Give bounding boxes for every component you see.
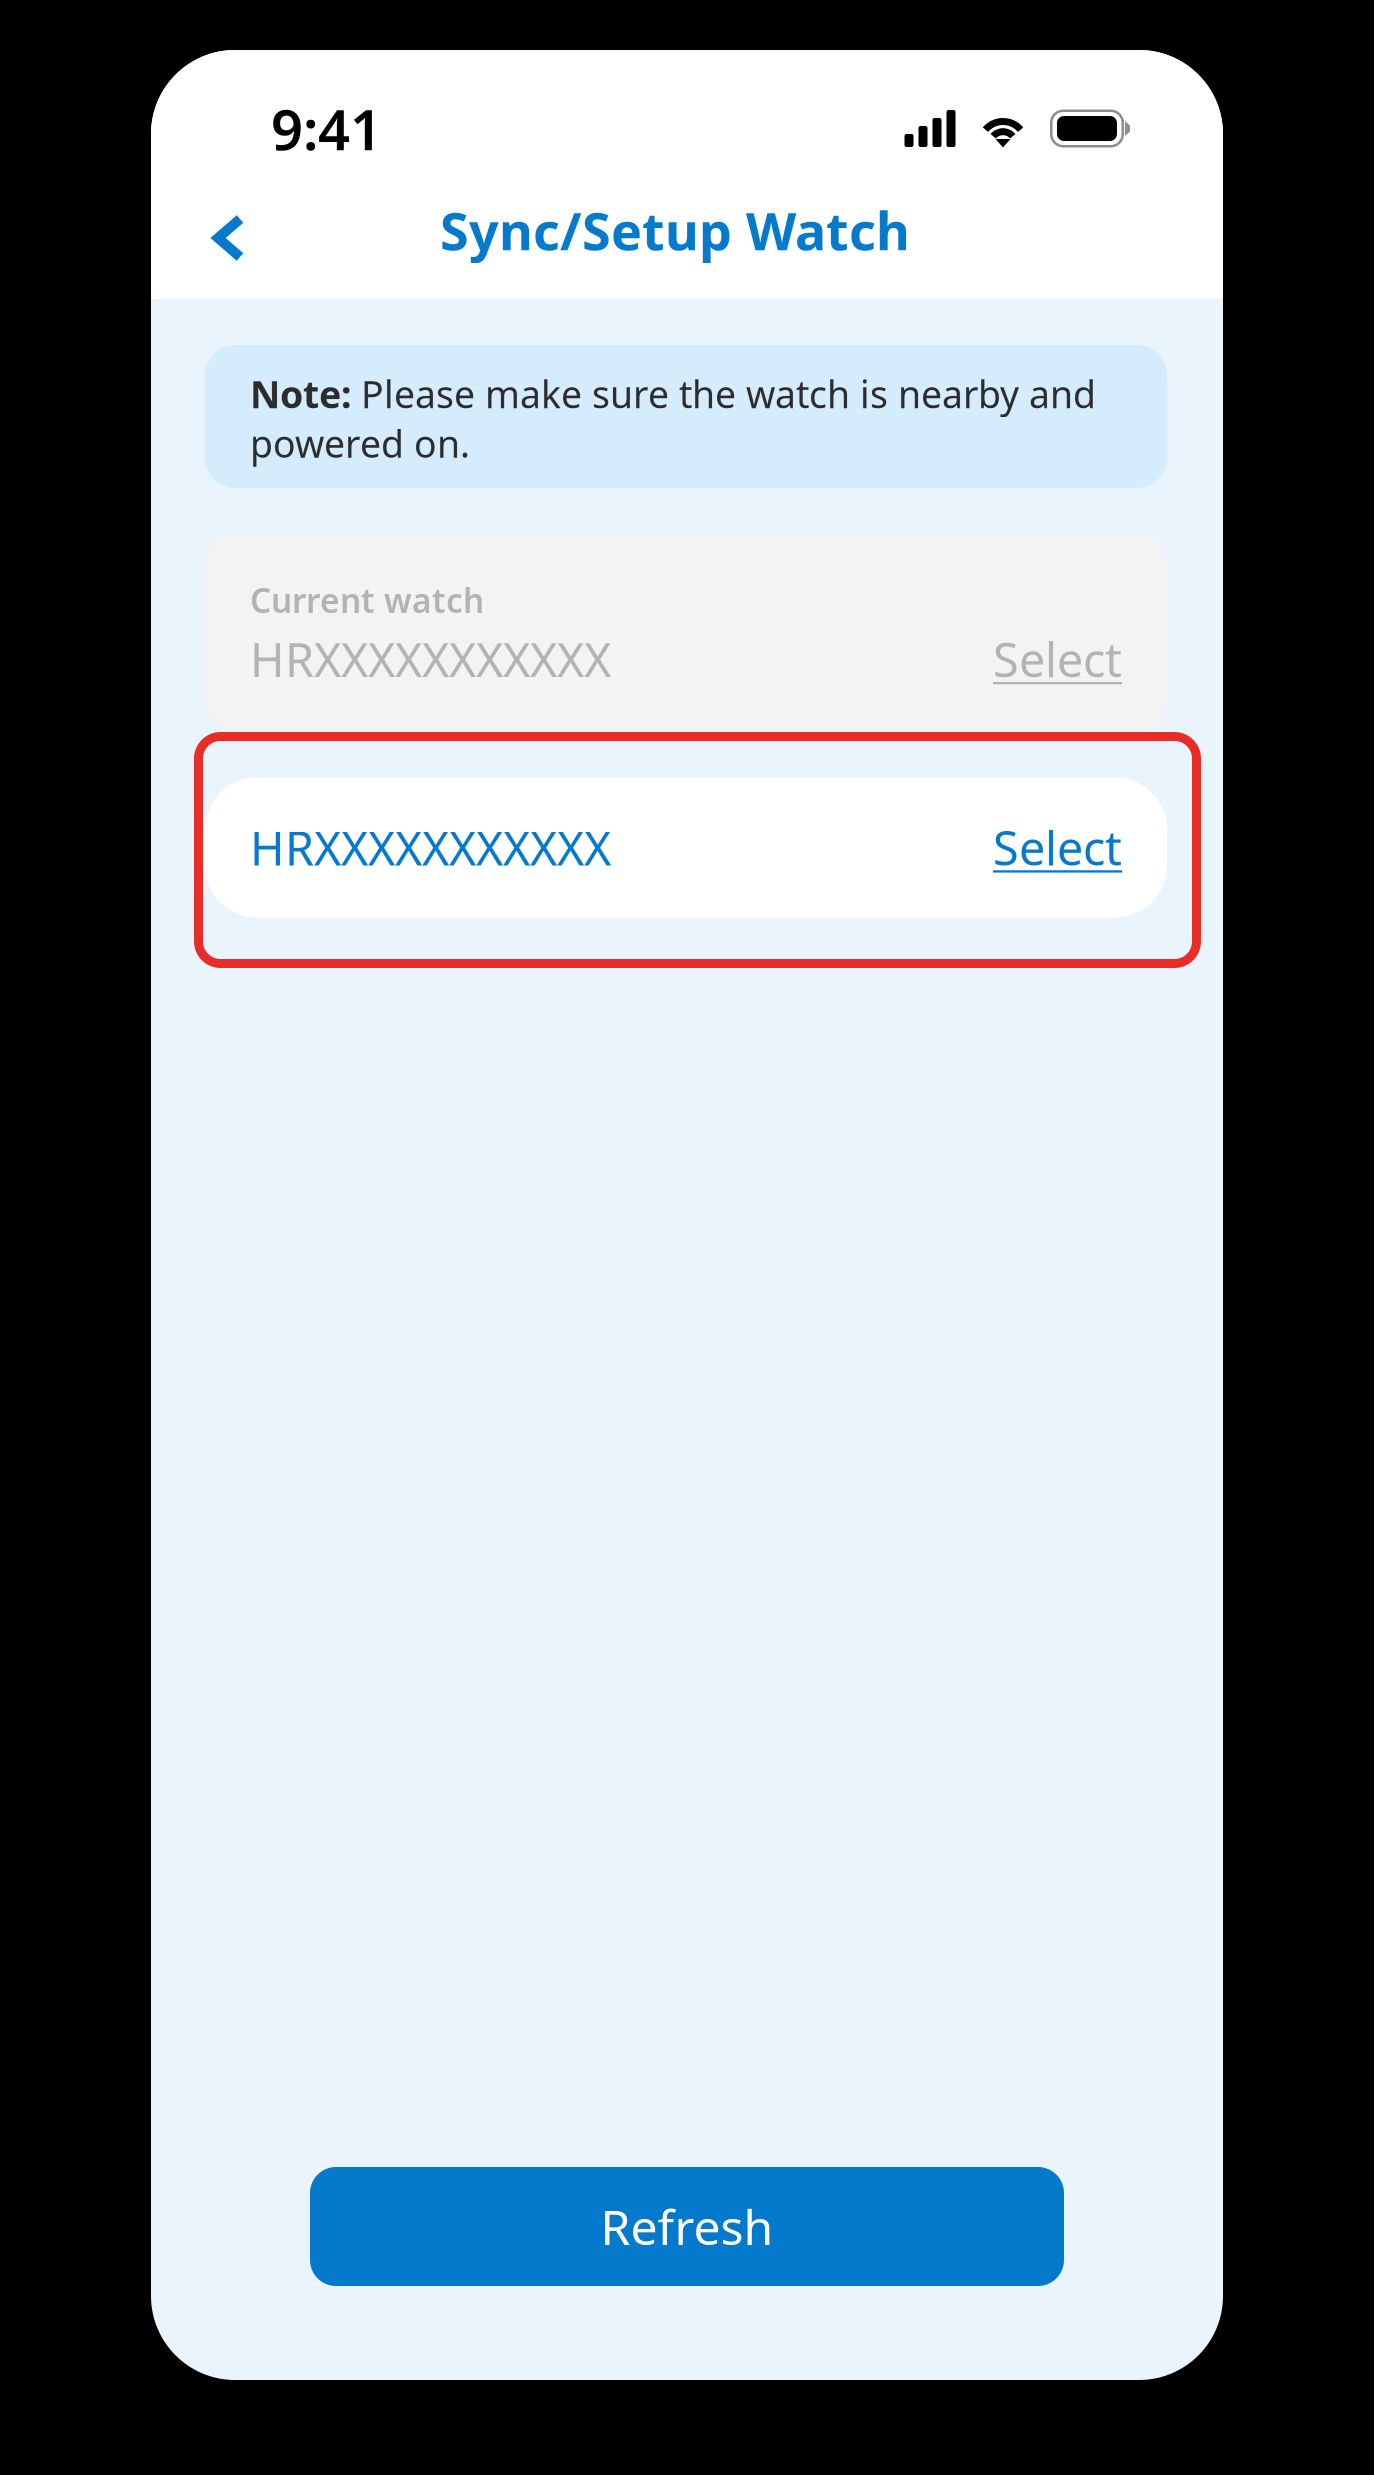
button[interactable]: Back	[151, 186, 266, 274]
staticText: 9:41	[271, 91, 382, 166]
button[interactable]: Select	[993, 628, 1122, 690]
staticText: Refresh	[600, 2195, 773, 2258]
staticText: Sync/Setup Watch	[440, 195, 910, 265]
button[interactable]: Refresh	[310, 2167, 1064, 2286]
staticText: Current watch	[250, 578, 484, 622]
staticText: Note: Please make sure the watch is near…	[250, 369, 1096, 468]
staticText: HRXXXXXXXXXXX	[250, 628, 611, 690]
staticText: HRXXXXXXXXXXX	[250, 816, 611, 878]
staticText: Select	[993, 816, 1122, 878]
staticText: Select	[993, 628, 1122, 690]
button[interactable]: HRXXXXXXXXXXX	[205, 777, 1167, 917]
